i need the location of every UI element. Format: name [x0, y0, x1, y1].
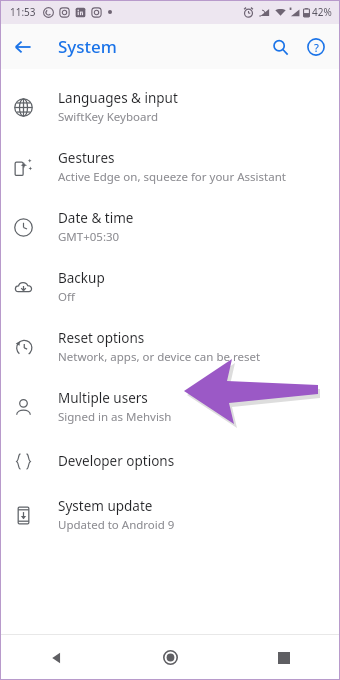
staticText: Signed in as Mehvish — [58, 409, 172, 425]
staticText: 42% — [312, 5, 332, 19]
button[interactable]: Date & time — [0, 197, 340, 257]
staticText: Backup — [58, 269, 105, 287]
button[interactable]: Backup — [0, 257, 340, 317]
button[interactable]: Reset options — [0, 317, 340, 377]
staticText: SwiftKey Keyboard — [58, 109, 158, 125]
button[interactable]: Home — [114, 635, 227, 680]
button[interactable]: Languages & input — [0, 77, 340, 137]
button[interactable]: Back — [0, 635, 114, 680]
button[interactable]: Recent apps — [227, 635, 340, 680]
staticText: Active Edge on, squeeze for your Assista… — [58, 169, 286, 185]
staticText: System — [58, 35, 117, 58]
staticText: System update — [58, 497, 153, 515]
staticText: Date & time — [58, 209, 134, 227]
button[interactable]: Multiple users — [0, 377, 340, 437]
button[interactable]: Developer options — [0, 437, 340, 485]
staticText: GMT+05:30 — [58, 229, 120, 245]
staticText: Developer options — [58, 452, 175, 470]
button[interactable]: Help — [300, 31, 332, 63]
staticText: ? — [314, 40, 319, 55]
staticText: 11:53 — [10, 5, 36, 19]
button[interactable]: Back — [8, 32, 38, 62]
staticText: Updated to Android 9 — [58, 517, 175, 533]
staticText: Multiple users — [58, 389, 148, 407]
staticText: Reset options — [58, 329, 145, 347]
staticText: Off — [58, 289, 75, 305]
button[interactable]: System update — [0, 485, 340, 545]
button[interactable]: Gestures — [0, 137, 340, 197]
staticText: Gestures — [58, 149, 115, 167]
button[interactable]: Search — [264, 31, 296, 63]
staticText: Network, apps, or device can be reset — [58, 349, 261, 365]
staticText: Languages & input — [58, 89, 178, 107]
